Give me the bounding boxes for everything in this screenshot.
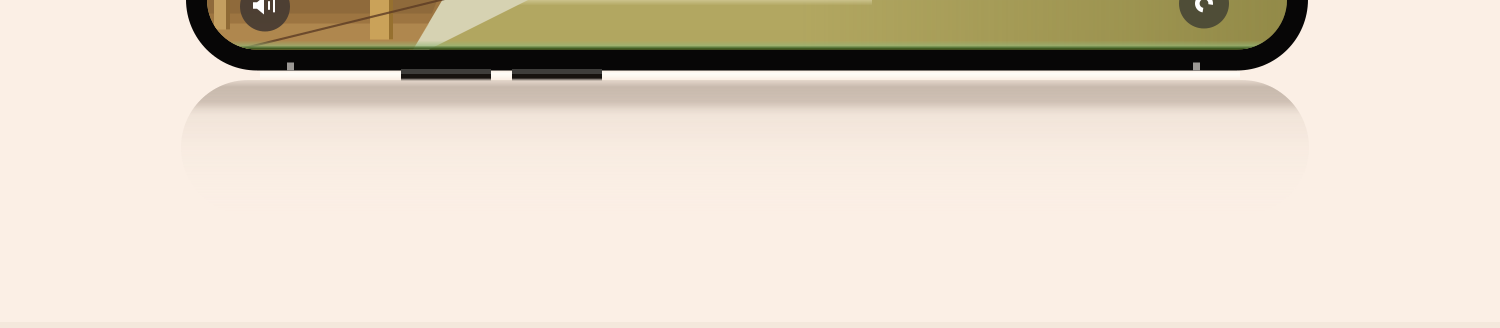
button[interactable]: Speaker (240, 0, 290, 31)
button[interactable]: End call (1179, 0, 1229, 28)
